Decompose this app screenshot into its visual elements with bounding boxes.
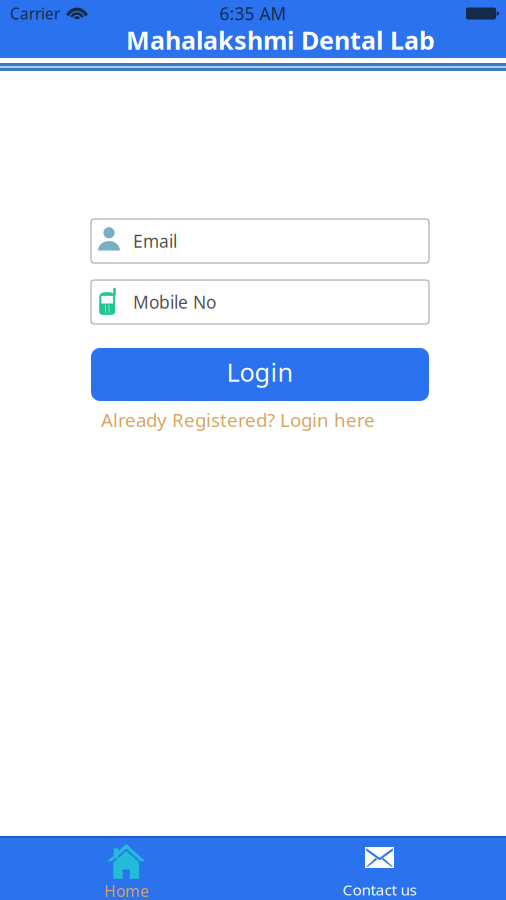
staticText: Mobile No (133, 290, 216, 314)
button[interactable]: Home (0, 838, 253, 900)
staticText: Home (104, 880, 149, 900)
button[interactable]: Login (91, 348, 429, 401)
button[interactable]: Contact us (253, 838, 506, 900)
staticText: Email (133, 229, 177, 253)
staticText: Carrier (10, 3, 60, 24)
staticText: Login (226, 355, 293, 389)
button[interactable]: Already Registered? Login here (101, 407, 375, 432)
staticText: Contact us (342, 879, 416, 900)
staticText: Already Registered? Login here (101, 407, 375, 432)
staticText: 6:35 AM (219, 2, 286, 25)
staticText: Mahalakshmi Dental Lab (126, 23, 435, 57)
